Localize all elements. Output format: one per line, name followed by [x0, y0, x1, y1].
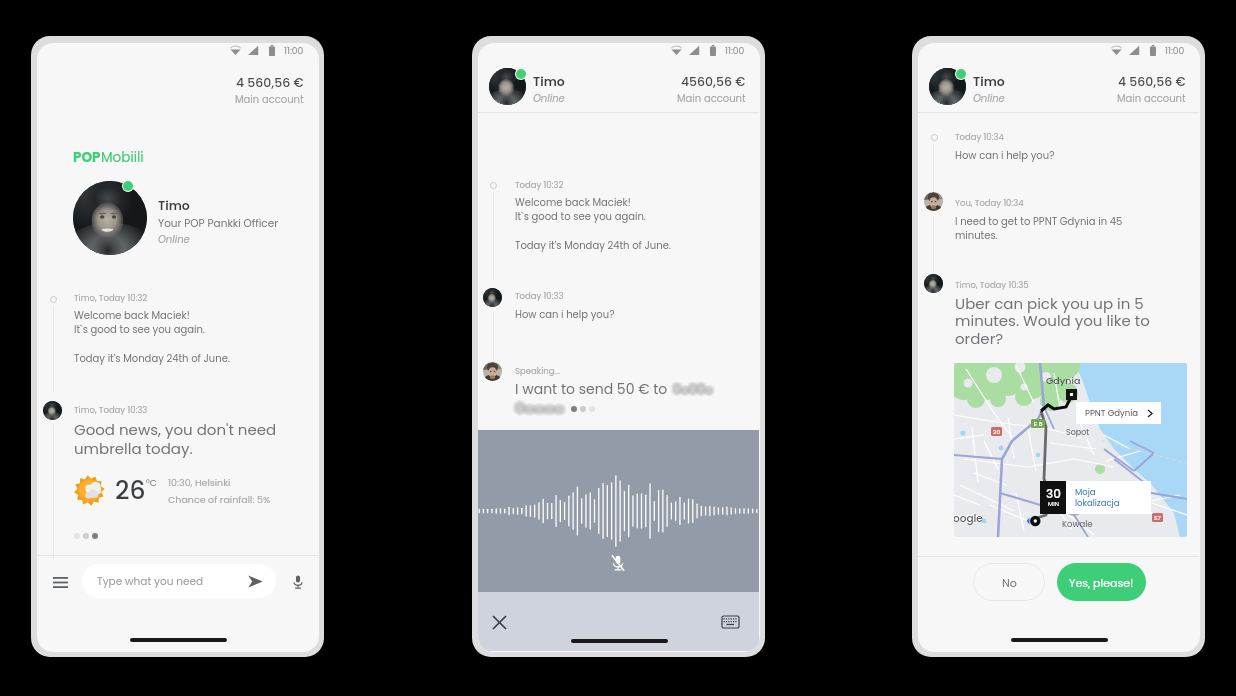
button[interactable]: Voice input — [281, 555, 314, 609]
staticText: Timo, Today 10:35 — [955, 279, 1029, 291]
staticText: Today 10:34 — [955, 131, 1004, 143]
staticText: 11:00 — [284, 44, 304, 57]
staticText: Today it's Monday 24th of June. — [74, 351, 230, 365]
staticText: How can i help you? — [955, 148, 1055, 162]
staticText: No — [1002, 575, 1017, 590]
staticText: Timo — [158, 197, 190, 214]
staticText: Your POP Pankki Officer — [158, 216, 279, 231]
button[interactable]: Menu — [44, 555, 76, 609]
button[interactable]: Keyboard — [713, 605, 747, 639]
staticText: Chance of rainfall: 5% — [168, 493, 271, 506]
staticText: Welcome back Maciek! — [74, 308, 190, 322]
staticText: You, Today 10:34 — [955, 197, 1024, 209]
staticText: Today 10:32 — [515, 179, 564, 191]
staticText: Good news, you don't need umbrella today… — [74, 419, 277, 459]
staticText: Online — [533, 91, 565, 105]
staticText: 11:00 — [1165, 44, 1185, 57]
staticText: Today it's Monday 24th of June. — [515, 238, 671, 252]
staticText: 11:00 — [725, 44, 745, 57]
staticText: How can i help you? — [515, 307, 615, 321]
button[interactable]: Type what you need — [82, 564, 276, 598]
staticText: Kowale — [1062, 518, 1093, 530]
staticText: Gdynia — [1046, 374, 1081, 387]
staticText: 30 — [1046, 485, 1061, 502]
staticText: Yes, please! — [1069, 575, 1134, 590]
staticText: Online — [973, 91, 1005, 105]
staticText: I need to get to PPNT Gdynia in 45 minut… — [955, 214, 1123, 242]
staticText: Main account — [677, 91, 746, 105]
staticText: Moja lokalizacja — [1075, 486, 1120, 509]
staticText: E 8 — [1034, 420, 1043, 428]
staticText: 26 — [115, 473, 146, 508]
button[interactable]: Yes, please! — [1057, 563, 1146, 601]
staticText: oogle — [954, 510, 983, 525]
staticText: Main account — [1117, 91, 1186, 105]
staticText: PPNT Gdynia — [1085, 407, 1139, 419]
staticText: Main account — [235, 92, 304, 106]
staticText: MIN — [1048, 500, 1059, 508]
staticText: oogle — [954, 511, 983, 526]
staticText: Today 10:33 — [515, 290, 564, 302]
staticText: °C — [146, 477, 157, 490]
staticText: 10:30, Helsinki — [168, 476, 231, 489]
button[interactable]: Close — [482, 605, 516, 639]
staticText: 4 560,56 € — [236, 74, 304, 91]
staticText: Type what you need — [97, 574, 204, 589]
button[interactable]: PPNT Gdynia — [1076, 402, 1161, 424]
staticText: 20 — [993, 428, 1001, 436]
staticText: 4560,56 € — [681, 73, 746, 90]
staticText: Timo — [973, 73, 1005, 90]
staticText: Timo, Today 10:33 — [74, 404, 148, 416]
staticText: It`s good to see you again. — [515, 209, 646, 223]
staticText: 4 560,56 € — [1118, 73, 1186, 90]
staticText: Timo — [533, 73, 565, 90]
staticText: Uber can pick you up in 5 minutes. Would… — [955, 293, 1150, 349]
staticText: I want to send 50 € to — [515, 379, 668, 399]
staticText: POP — [73, 148, 101, 167]
staticText: Sopot — [1066, 427, 1090, 438]
button[interactable]: No — [973, 563, 1045, 601]
staticText: Online — [158, 232, 190, 246]
staticText: Speaking... — [515, 365, 560, 377]
staticText: Welcome back Maciek! — [515, 195, 631, 209]
staticText: S7 — [1154, 514, 1161, 522]
staticText: Timo, Today 10:32 — [74, 292, 148, 304]
staticText: It`s good to see you again. — [74, 322, 205, 336]
staticText: Mobiili — [101, 148, 144, 167]
